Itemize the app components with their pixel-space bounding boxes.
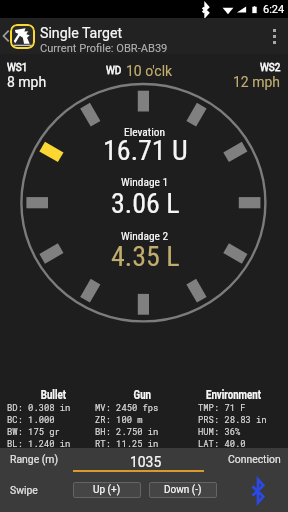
staticText: BC: 1.000 xyxy=(7,414,55,426)
staticText: Windage 1 xyxy=(121,175,169,188)
button[interactable]: Up (+) xyxy=(73,482,141,498)
staticText: Swipe xyxy=(10,484,38,496)
staticText: 12 mph xyxy=(233,74,281,90)
staticText: BD: 0.308 in xyxy=(7,402,71,414)
staticText: TMP: 71 F xyxy=(198,402,246,414)
staticText: HUM: 36% xyxy=(198,426,241,438)
staticText: 1035 xyxy=(130,454,162,470)
staticText: Bullet xyxy=(41,387,66,402)
staticText: RT: 11.25 in xyxy=(95,438,159,450)
staticText: PRS: 28.83 in xyxy=(198,414,267,426)
staticText: WS2 xyxy=(260,62,281,74)
staticText: Elevation xyxy=(124,125,166,138)
staticText: Down (-) xyxy=(164,484,202,496)
staticText: BH: 2.750 in xyxy=(95,426,159,438)
staticText: Range (m) xyxy=(10,453,59,465)
staticText: MV: 2450 fps xyxy=(95,402,159,414)
staticText: LAT: 40.0 xyxy=(198,438,246,450)
staticText: Windage 2 xyxy=(121,229,169,242)
staticText: Gun xyxy=(134,387,151,402)
staticText: WS1 xyxy=(7,62,28,74)
staticText: 10 o'clk xyxy=(126,63,173,79)
staticText: 3.06 L xyxy=(111,187,180,220)
staticText: BW: 175 gr xyxy=(7,426,60,438)
staticText: Up (+) xyxy=(93,484,121,496)
staticText: 16.71 U xyxy=(103,134,188,167)
staticText: BL: 1.240 in xyxy=(7,438,71,450)
other: Back xyxy=(3,30,9,42)
button[interactable]: Back xyxy=(0,18,288,54)
button[interactable]: 1035 xyxy=(73,451,204,472)
button[interactable]: More options xyxy=(260,18,288,54)
staticText: Environment xyxy=(206,387,261,402)
staticText: Single Target xyxy=(40,25,123,42)
staticText: WD xyxy=(106,65,122,77)
button[interactable]: Bluetooth xyxy=(251,479,265,503)
button[interactable]: Down (-) xyxy=(149,482,217,498)
staticText: 4.35 L xyxy=(111,240,180,273)
staticText: 8 mph xyxy=(7,74,47,90)
staticText: ZR: 100 m xyxy=(95,414,143,426)
staticText: 6:24 xyxy=(263,3,285,16)
staticText: Connection xyxy=(228,453,281,465)
staticText: Current Profile: OBR-AB39 xyxy=(40,42,168,55)
